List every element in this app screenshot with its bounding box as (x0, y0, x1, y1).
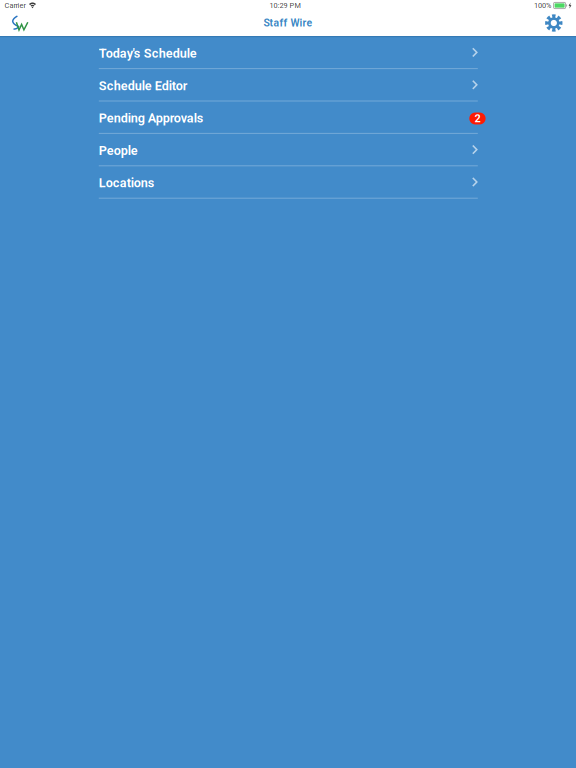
staticText: Pending Approvals (99, 111, 204, 126)
staticText: Schedule Editor (99, 78, 188, 93)
button[interactable]: Pending Approvals (99, 101, 478, 133)
staticText: 10:29 PM (270, 1, 301, 10)
button[interactable]: Staff Wire home (8, 12, 32, 34)
button[interactable]: Schedule Editor (99, 69, 478, 100)
staticText: People (99, 143, 138, 158)
button[interactable]: People (99, 134, 478, 165)
staticText: 2 (474, 112, 480, 125)
staticText: Staff Wire (263, 17, 312, 29)
button[interactable]: Today's Schedule (99, 37, 478, 68)
button[interactable]: Locations (99, 166, 478, 198)
button[interactable]: Settings (541, 10, 566, 36)
staticText: Locations (99, 176, 155, 190)
staticText: Today's Schedule (99, 46, 197, 61)
staticText: Carrier (4, 1, 25, 10)
staticText: 100% (534, 1, 551, 10)
